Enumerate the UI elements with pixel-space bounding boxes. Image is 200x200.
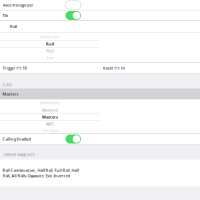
button[interactable]: Voice Recognizer bbox=[0, 0, 200, 10]
staticText: CLASS bbox=[2, 83, 12, 87]
staticText: Calling Enabled bbox=[2, 136, 30, 142]
staticText: Roll bbox=[10, 24, 17, 29]
staticText: Roll bbox=[46, 41, 54, 47]
staticText: CURRENT MANEUVER bbox=[2, 153, 34, 157]
staticText: Pitch bbox=[46, 48, 54, 53]
staticText: Choose axis bbox=[40, 35, 60, 39]
staticText: Trigger (°): 10 bbox=[2, 65, 26, 71]
button[interactable]: Masters bbox=[0, 88, 200, 99]
staticText: Voice Recognizer bbox=[2, 2, 33, 8]
staticText: Yaw bbox=[46, 56, 53, 60]
staticText: Masters bbox=[42, 114, 58, 120]
staticText: ABFS bbox=[46, 121, 54, 126]
staticText: Masters bbox=[2, 91, 18, 97]
staticText: Intermediate bbox=[40, 101, 60, 105]
staticText: Advanced bbox=[42, 107, 58, 112]
button[interactable]: Roll bbox=[0, 21, 200, 32]
staticText: Free Style bbox=[42, 128, 58, 133]
staticText: Reset (°): 10 bbox=[102, 65, 124, 71]
staticText: Tilt bbox=[2, 13, 8, 18]
button[interactable]: Tilt bbox=[0, 10, 200, 20]
staticText: Roll Combination, Half Roll, Full Roll, … bbox=[2, 168, 78, 178]
button[interactable]: Calling Enabled bbox=[0, 134, 200, 144]
